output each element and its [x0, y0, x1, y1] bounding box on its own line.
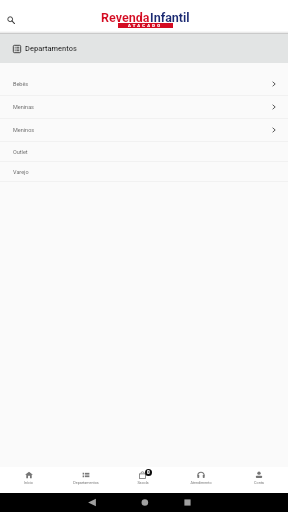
staticText: Meninas — [13, 104, 34, 110]
button[interactable]: Varejo — [0, 162, 288, 182]
staticText: Infantil — [150, 10, 190, 25]
button[interactable]: Atendimento — [172, 467, 230, 489]
button[interactable]: Início — [0, 467, 57, 489]
staticText: Atendimento — [190, 481, 212, 485]
button[interactable]: Outlet — [0, 142, 288, 162]
button[interactable]: Search — [3, 12, 19, 28]
staticText: Sacola — [137, 481, 149, 485]
button[interactable]: Conta — [230, 467, 288, 489]
button[interactable]: Bebês — [0, 73, 288, 96]
staticText: Início — [24, 481, 33, 485]
staticText: ATACADO — [128, 23, 163, 28]
button[interactable]: Departamentos — [57, 467, 114, 489]
button[interactable]: Meninas — [0, 96, 288, 119]
button[interactable]: Meninos — [0, 119, 288, 142]
staticText: Departamentos — [73, 481, 99, 485]
staticText: Revenda — [101, 10, 150, 25]
staticText: Departamentos — [25, 44, 77, 53]
staticText: Conta — [254, 481, 264, 485]
staticText: Bebês — [13, 81, 29, 87]
staticText: Varejo — [13, 169, 29, 175]
button[interactable]: 0 — [114, 467, 172, 489]
staticText: Meninos — [13, 127, 35, 133]
staticText: Outlet — [13, 149, 28, 155]
staticText: 0 — [147, 470, 150, 475]
